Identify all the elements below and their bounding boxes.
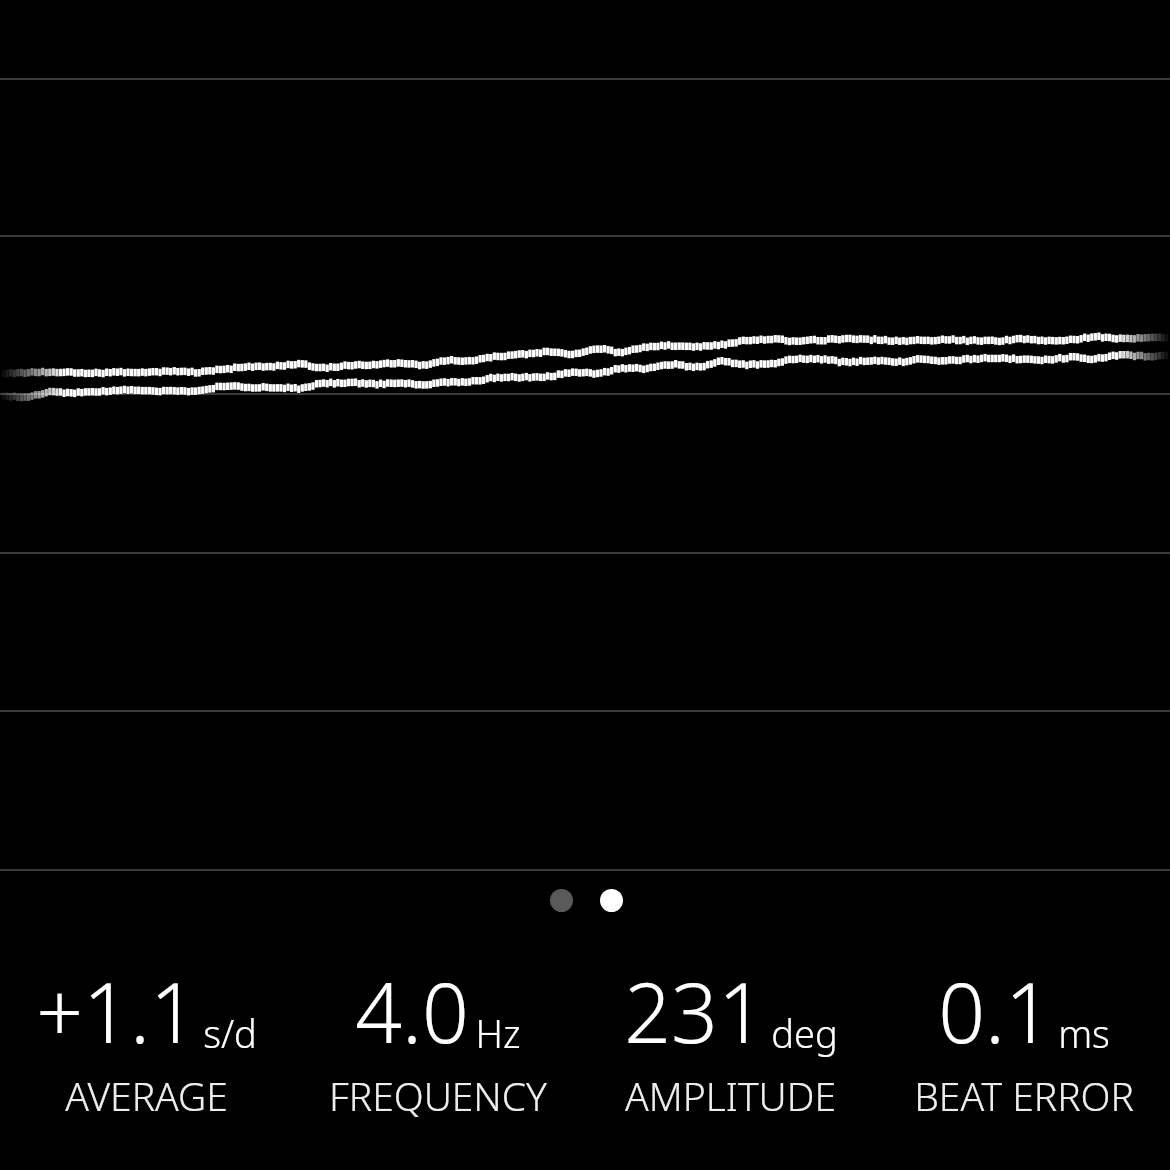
button[interactable]: +1.1 [0, 955, 292, 1122]
staticText: 4.0 [355, 955, 469, 1067]
staticText: 231 [624, 955, 765, 1067]
staticText: deg [771, 1007, 838, 1059]
staticText: AMPLITUDE [625, 1069, 836, 1122]
staticText: +1.1 [36, 955, 197, 1067]
staticText: BEAT ERROR [914, 1069, 1134, 1122]
button[interactable]: 0.1 [877, 955, 1170, 1122]
button[interactable]: 231 [584, 955, 877, 1122]
staticText: FREQUENCY [329, 1069, 547, 1122]
staticText: AVERAGE [65, 1069, 228, 1122]
staticText: s/d [203, 1007, 257, 1059]
button[interactable]: Page 1 [550, 889, 573, 912]
staticText: ms [1058, 1007, 1110, 1059]
staticText: Hz [475, 1007, 521, 1059]
button[interactable]: 4.0 [292, 955, 584, 1122]
button[interactable]: Page 2, selected [600, 889, 623, 912]
staticText: 0.1 [938, 955, 1052, 1067]
